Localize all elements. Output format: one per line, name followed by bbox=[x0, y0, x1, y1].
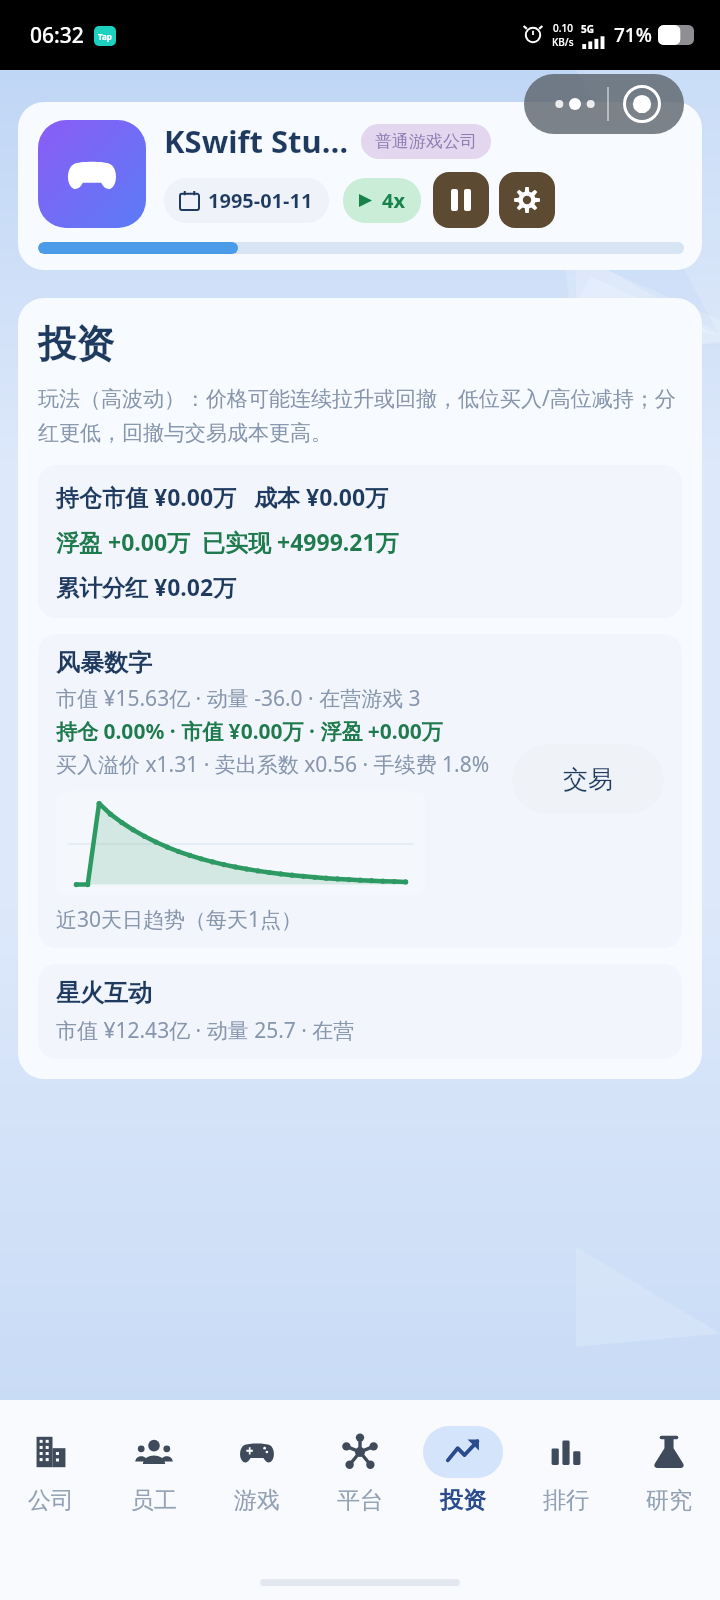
staticText: 星火互动 bbox=[56, 978, 152, 1008]
staticText: 06:32 bbox=[30, 21, 84, 50]
staticText: 研究 bbox=[646, 1486, 692, 1515]
button[interactable]: 投资 bbox=[411, 1426, 514, 1515]
button[interactable]: Pause bbox=[433, 172, 489, 228]
staticText: 员工 bbox=[131, 1486, 177, 1515]
button[interactable]: 游戏 bbox=[205, 1426, 308, 1515]
staticText: Tap bbox=[98, 31, 112, 42]
staticText: 风暴数字 bbox=[56, 648, 152, 678]
staticText: 普通游戏公司 bbox=[375, 131, 477, 152]
staticText: KSwift Stu… bbox=[164, 120, 349, 162]
staticText: 买入溢价 x1.31 · 卖出系数 x0.56 · 手续费 1.8% bbox=[56, 750, 490, 779]
staticText: 交易 bbox=[563, 764, 613, 795]
staticText: KB/s bbox=[552, 35, 574, 49]
staticText: 4x bbox=[382, 187, 405, 214]
staticText: 市值 ¥12.43亿 · 动量 25.7 · 在营 bbox=[56, 1016, 355, 1045]
button[interactable]: Settings bbox=[499, 172, 555, 228]
staticText: 市值 ¥15.63亿 · 动量 -36.0 · 在营游戏 3 bbox=[56, 684, 421, 713]
button[interactable]: 交易 bbox=[512, 744, 664, 814]
staticText: 玩法（高波动）：价格可能连续拉升或回撤，低位买入/高位减持；分红更低，回撤与交易… bbox=[38, 384, 682, 447]
button[interactable]: 1995-01-11 bbox=[180, 187, 313, 214]
button[interactable]: 平台 bbox=[308, 1426, 411, 1515]
staticText: 累计分红 ¥0.02万 bbox=[56, 571, 237, 602]
button[interactable]: 员工 bbox=[102, 1426, 205, 1515]
staticText: 游戏 bbox=[234, 1486, 280, 1515]
button[interactable]: 星火互动 bbox=[56, 978, 664, 1045]
button[interactable]: 公司 bbox=[0, 1426, 102, 1515]
staticText: 持仓市值 ¥0.00万 成本 ¥0.00万 bbox=[56, 481, 389, 512]
staticText: 1995-01-11 bbox=[208, 187, 313, 214]
staticText: 公司 bbox=[28, 1486, 74, 1515]
staticText: 0.10 bbox=[553, 21, 573, 35]
staticText: 平台 bbox=[337, 1486, 383, 1515]
staticText: 投资 bbox=[38, 320, 114, 368]
button[interactable]: 排行 bbox=[514, 1426, 617, 1515]
button[interactable]: Recording controls bbox=[524, 74, 684, 134]
button[interactable]: 研究 bbox=[617, 1426, 720, 1515]
staticText: 浮盈 +0.00万 已实现 +4999.21万 bbox=[56, 526, 399, 557]
staticText: 5G bbox=[581, 22, 594, 36]
staticText: 持仓 0.00% · 市值 ¥0.00万 · 浮盈 +0.00万 bbox=[56, 717, 443, 746]
staticText: 排行 bbox=[543, 1486, 589, 1515]
staticText: 投资 bbox=[440, 1486, 486, 1515]
staticText: 近30天日趋势（每天1点） bbox=[56, 905, 303, 934]
staticText: 71% bbox=[614, 22, 652, 48]
button[interactable]: 4x bbox=[359, 187, 405, 214]
